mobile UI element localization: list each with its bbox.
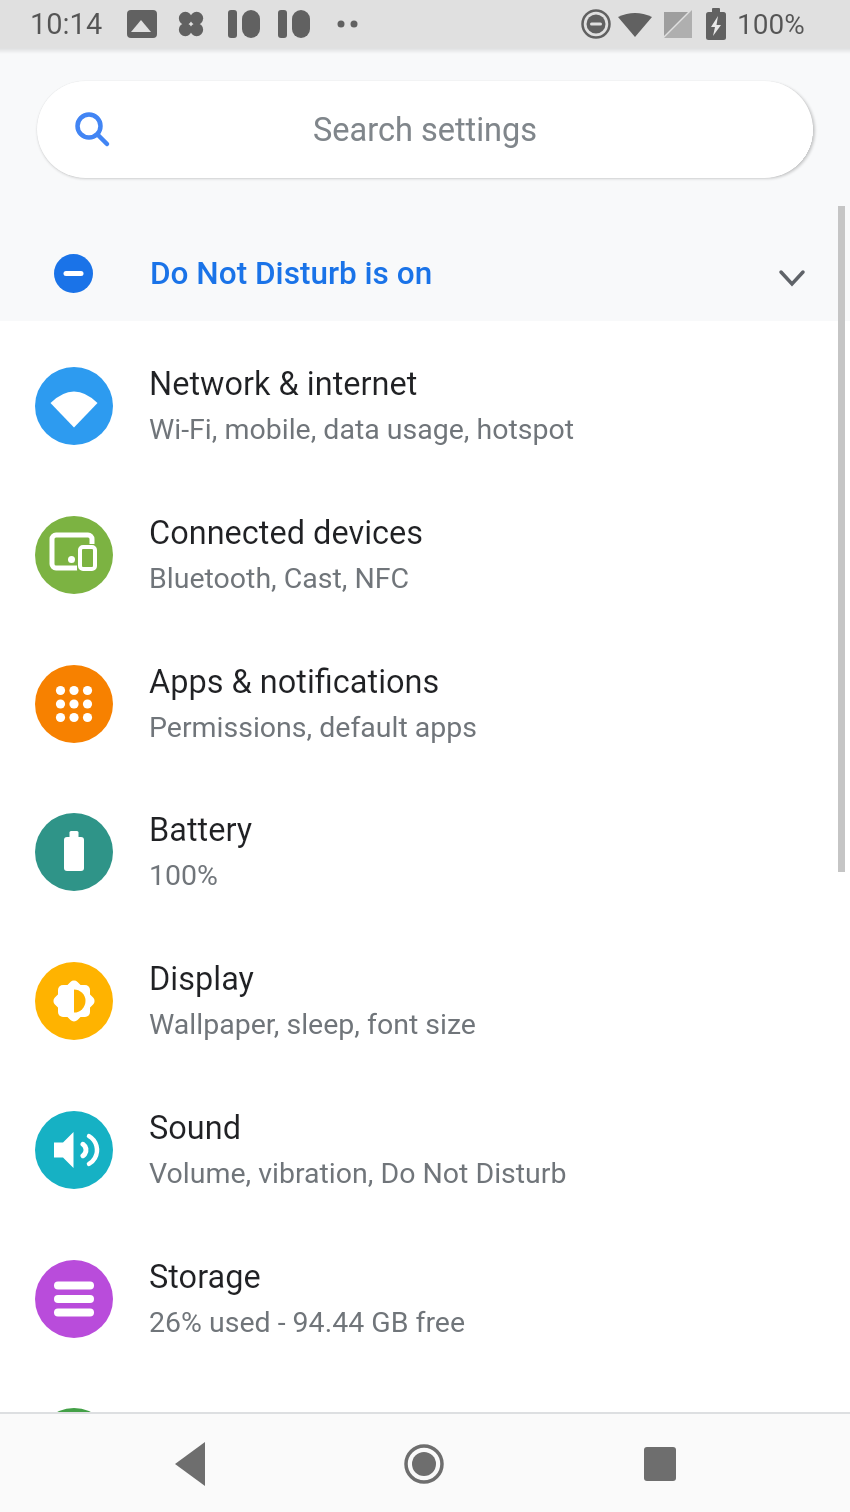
staticText: Do Not Disturb is on — [150, 255, 433, 292]
button[interactable]: Connected devices — [0, 480, 850, 629]
button[interactable]: Display — [0, 926, 850, 1075]
staticText: 100% — [149, 859, 218, 892]
staticText: Apps & notifications — [149, 663, 440, 701]
staticText: Volume, vibration, Do Not Disturb — [149, 1157, 567, 1190]
staticText: Wallpaper, sleep, font size — [149, 1008, 476, 1041]
button[interactable]: Apps & notifications — [0, 629, 850, 778]
staticText: Wi-Fi, mobile, data usage, hotspot — [149, 413, 575, 446]
button[interactable]: Sound — [0, 1075, 850, 1224]
button[interactable]: Storage — [0, 1224, 850, 1373]
staticText: Permissions, default apps — [149, 711, 478, 744]
button[interactable]: Do Not Disturb is on — [0, 243, 850, 303]
button[interactable] — [154, 1428, 226, 1500]
staticText: 26% used - 94.44 GB free — [149, 1306, 466, 1339]
staticText: Bluetooth, Cast, NFC — [149, 562, 410, 595]
staticText: Network & internet — [149, 365, 418, 403]
staticText: Connected devices — [149, 514, 424, 552]
button[interactable] — [388, 1428, 460, 1500]
staticText: 100% — [737, 8, 805, 41]
button[interactable] — [0, 1372, 850, 1512]
staticText: 10:14 — [30, 7, 103, 41]
staticText: Storage — [149, 1258, 261, 1296]
button[interactable]: Network & internet — [0, 331, 850, 480]
staticText: Display — [149, 960, 254, 998]
button[interactable] — [624, 1428, 696, 1500]
button[interactable]: Search settings — [37, 81, 813, 178]
staticText: Battery — [149, 811, 253, 849]
staticText: Sound — [149, 1109, 242, 1147]
staticText: Search settings — [313, 111, 538, 149]
button[interactable]: Battery — [0, 777, 850, 926]
